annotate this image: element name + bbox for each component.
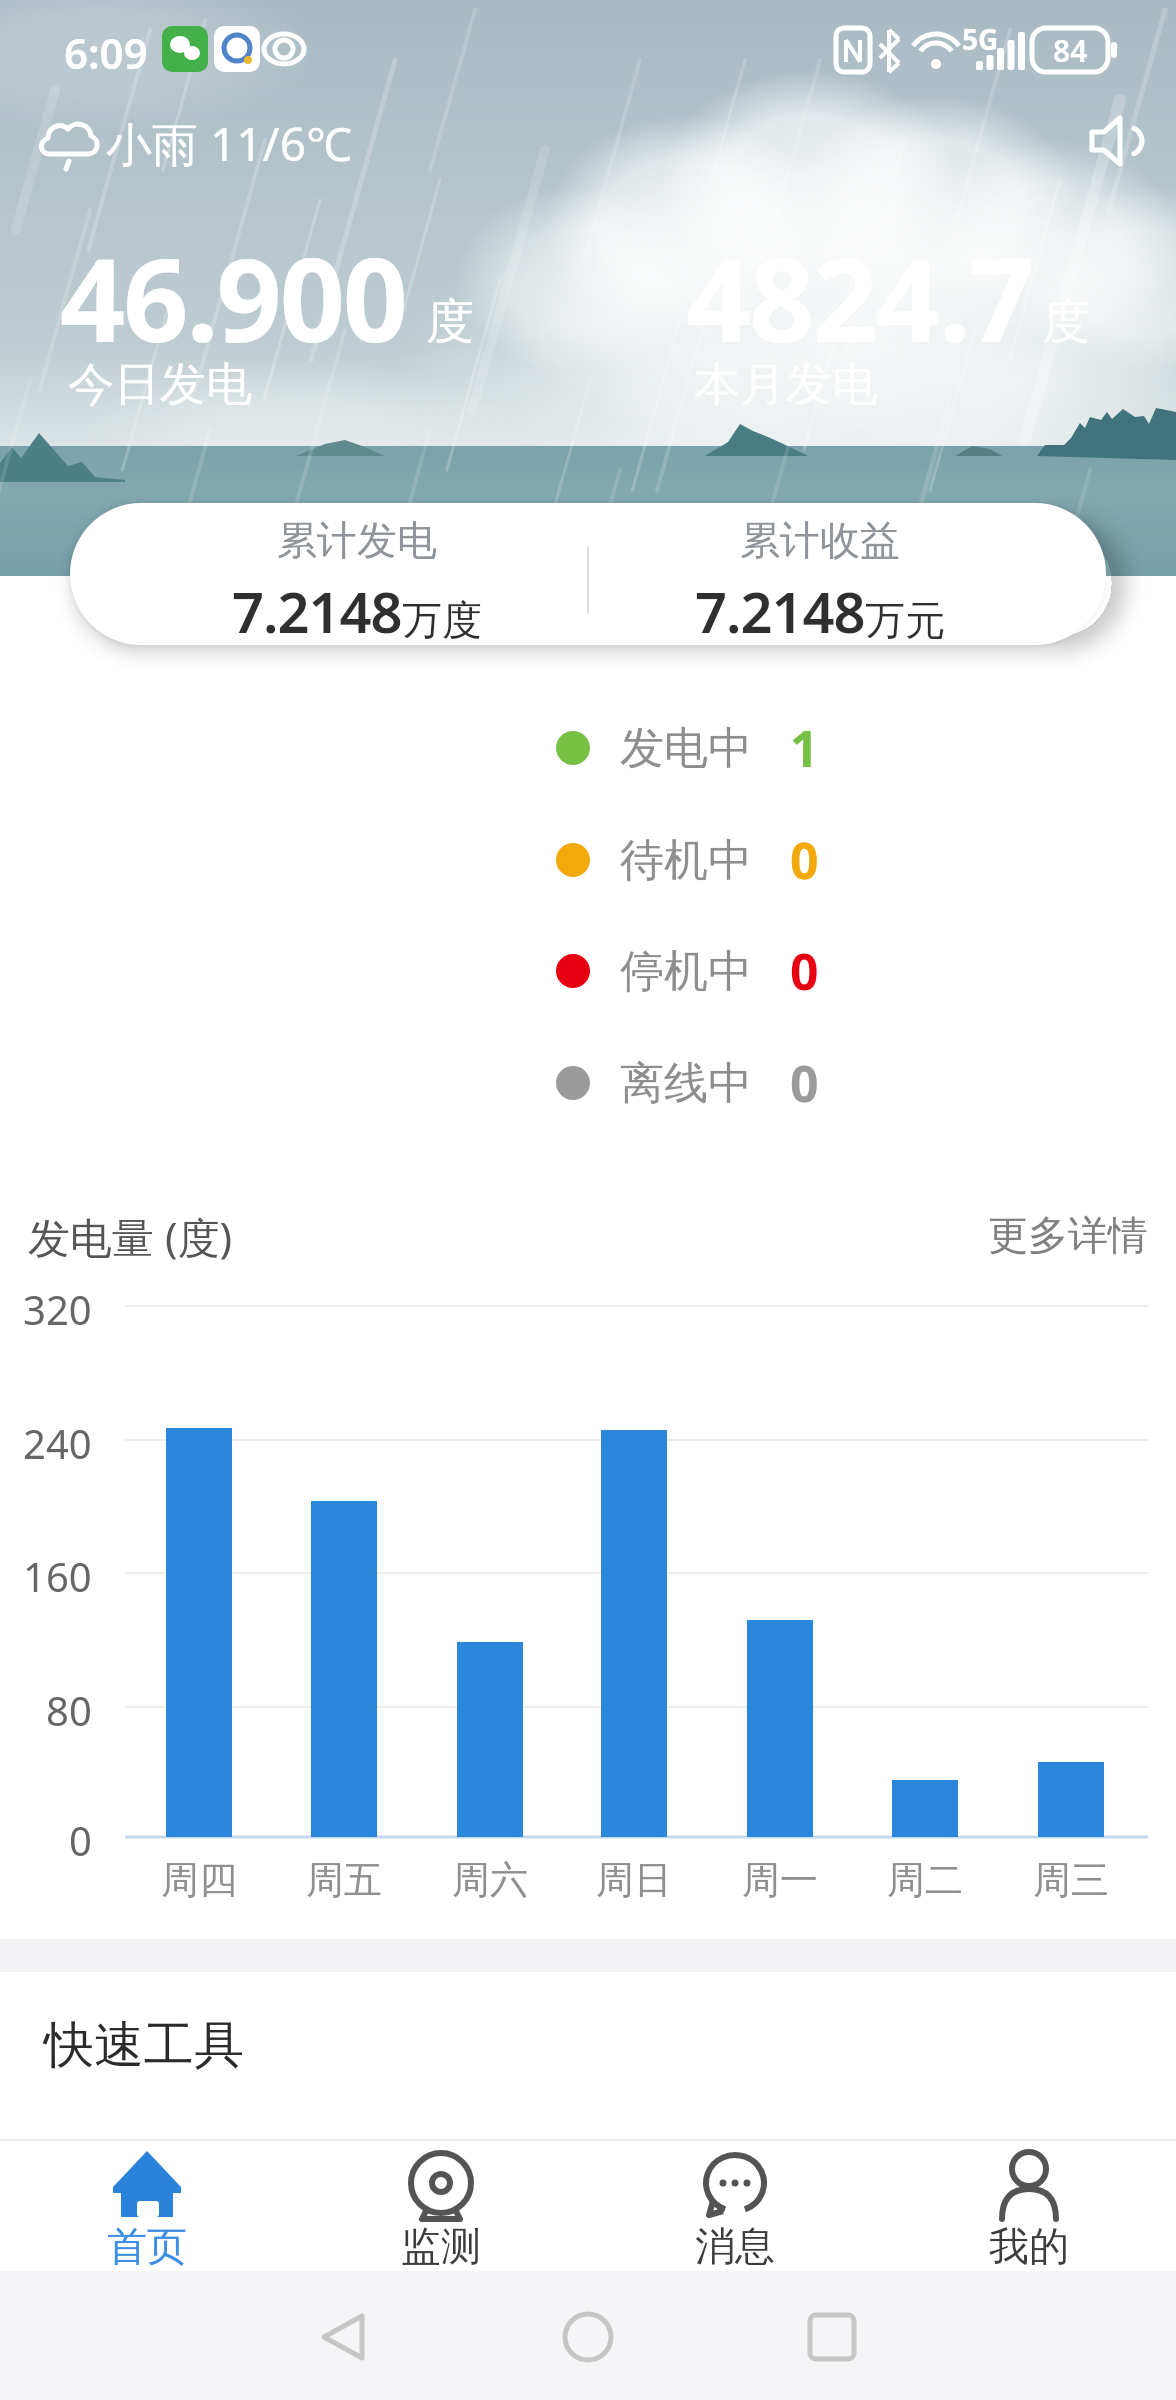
staticText: 0 xyxy=(69,1813,92,1861)
staticText: 周日 xyxy=(596,1856,672,1904)
staticText: 今日发电 xyxy=(68,356,252,414)
staticText: 周三 xyxy=(1033,1856,1109,1904)
button[interactable]: 离线中 xyxy=(556,1049,819,1117)
button[interactable]: 更多详情 xyxy=(800,1210,1148,1258)
staticText: 万度 xyxy=(402,595,482,645)
staticText: 周一 xyxy=(742,1856,818,1904)
button[interactable]: 我的 xyxy=(919,2141,1139,2271)
button[interactable]: 发电中 xyxy=(556,714,819,782)
staticText: 7.2148 xyxy=(232,573,402,645)
staticText: 度 xyxy=(426,292,474,352)
staticText: 0 xyxy=(790,1049,819,1117)
staticText: 84 xyxy=(1053,30,1088,70)
button[interactable]: 首页 xyxy=(37,2141,257,2271)
staticText: 46.900 xyxy=(60,220,407,375)
staticText: 1 xyxy=(790,714,819,782)
staticText: 周五 xyxy=(306,1856,382,1904)
button[interactable]: 监测 xyxy=(331,2141,551,2271)
staticText: 快速工具 xyxy=(44,2014,244,2077)
staticText: 待机中 xyxy=(620,833,752,888)
staticText: 我的 xyxy=(989,2221,1069,2271)
staticText: 7.2148 xyxy=(695,573,865,645)
staticText: 消息 xyxy=(695,2221,775,2271)
staticText: 0 xyxy=(790,937,819,1005)
staticText: 发电中 xyxy=(620,721,752,776)
staticText: 首页 xyxy=(107,2221,187,2271)
staticText: 周六 xyxy=(452,1856,528,1904)
staticText: 累计收益 xyxy=(740,515,900,565)
button[interactable]: 待机中 xyxy=(556,826,819,894)
staticText: 发电量 (度) xyxy=(28,1208,233,1265)
button[interactable]: 消息 xyxy=(625,2141,845,2271)
button[interactable]: 累计发电 xyxy=(70,503,1106,645)
staticText: 周二 xyxy=(887,1856,963,1904)
button[interactable]: 停机中 xyxy=(556,937,819,1005)
staticText: 累计发电 xyxy=(277,515,437,565)
staticText: 80 xyxy=(46,1683,92,1731)
staticText: 停机中 xyxy=(620,944,752,999)
staticText: 160 xyxy=(23,1549,92,1597)
staticText: 本月发电 xyxy=(694,356,878,414)
staticText: 监测 xyxy=(401,2221,481,2271)
staticText: 5G xyxy=(962,20,999,58)
staticText: 320 xyxy=(23,1282,92,1330)
staticText: 6:09 xyxy=(64,24,148,81)
staticText: 4824.7 xyxy=(686,220,1033,375)
staticText: 0 xyxy=(790,826,819,894)
staticText: 周四 xyxy=(161,1856,237,1904)
staticText: 万元 xyxy=(865,595,945,645)
staticText: 更多详情 xyxy=(988,1210,1148,1258)
staticText: 小雨 11/6℃ xyxy=(106,112,352,175)
staticText: 240 xyxy=(23,1416,92,1464)
staticText: 离线中 xyxy=(620,1056,752,1111)
staticText: 度 xyxy=(1042,292,1090,352)
